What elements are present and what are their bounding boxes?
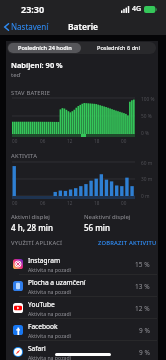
- staticText: 12 %: [135, 304, 150, 313]
- staticText: Aktivita na pozadí: [28, 354, 72, 360]
- staticText: AKTIVITA: [11, 152, 38, 160]
- button[interactable]: YouTube: [6, 297, 158, 319]
- staticText: Aktivita na pozadí: [28, 288, 72, 295]
- staticText: 23:30: [21, 3, 45, 15]
- staticText: STAV BATERIE: [11, 89, 51, 97]
- staticText: Posledních 24 hodin: [18, 44, 72, 52]
- button[interactable]: Posledních 24 hodin: [8, 43, 81, 53]
- button[interactable]: Facebook: [6, 319, 158, 341]
- button[interactable]: Safari: [6, 341, 158, 360]
- staticText: 60 m: [141, 160, 153, 167]
- button[interactable]: Instagram: [6, 253, 158, 275]
- staticText: 00: [121, 138, 135, 144]
- staticText: Nastavení: [11, 21, 49, 32]
- staticText: Aktivní displej: [11, 213, 50, 221]
- staticText: 06: [40, 200, 67, 206]
- staticText: 12: [67, 200, 94, 206]
- staticText: Facebook: [28, 322, 58, 331]
- button[interactable]: Nastavení: [0, 19, 55, 34]
- staticText: Safari: [28, 344, 46, 353]
- staticText: YouTube: [28, 300, 55, 309]
- staticText: 9 %: [139, 326, 150, 335]
- staticText: 9 %: [139, 348, 150, 357]
- staticText: 0 %: [141, 130, 149, 137]
- button[interactable]: Posledních 6 dní: [81, 43, 155, 53]
- staticText: 00: [12, 200, 40, 206]
- staticText: 50 %: [141, 113, 152, 120]
- staticText: 18: [94, 138, 121, 144]
- staticText: Aktivita na pozadí: [28, 332, 72, 339]
- staticText: VYUŽITÍ APLIKACÍ: [11, 239, 63, 247]
- staticText: 4G: [132, 4, 142, 14]
- staticText: Aktivita na pozadí: [28, 310, 72, 317]
- staticText: 0 m: [141, 193, 150, 200]
- staticText: teď: [11, 71, 21, 79]
- staticText: Instagram: [28, 256, 61, 265]
- staticText: ZOBRAZIT AKTIVITU: [98, 239, 157, 247]
- button[interactable]: Plocha a uzamčení: [6, 275, 158, 297]
- staticText: Nabíjení: 90 %: [11, 60, 63, 70]
- staticText: 06: [40, 138, 67, 144]
- button[interactable]: ZOBRAZIT AKTIVITU: [98, 239, 157, 247]
- staticText: 30 m: [141, 176, 153, 183]
- staticText: 12: [67, 138, 94, 144]
- staticText: Posledních 6 dní: [97, 44, 140, 52]
- staticText: 15 %: [135, 260, 150, 269]
- staticText: Neaktivní displej: [84, 213, 131, 221]
- staticText: 13 %: [135, 282, 150, 291]
- staticText: Aktivita na pozadí: [28, 266, 72, 273]
- staticText: 4 h, 28 min: [11, 222, 53, 233]
- staticText: 100 %: [141, 96, 155, 103]
- staticText: 56 min: [84, 222, 110, 233]
- staticText: 18: [94, 200, 121, 206]
- staticText: 00: [12, 138, 40, 144]
- staticText: Plocha a uzamčení: [28, 278, 86, 287]
- staticText: 00: [121, 200, 135, 206]
- staticText: Baterie: [68, 21, 99, 33]
